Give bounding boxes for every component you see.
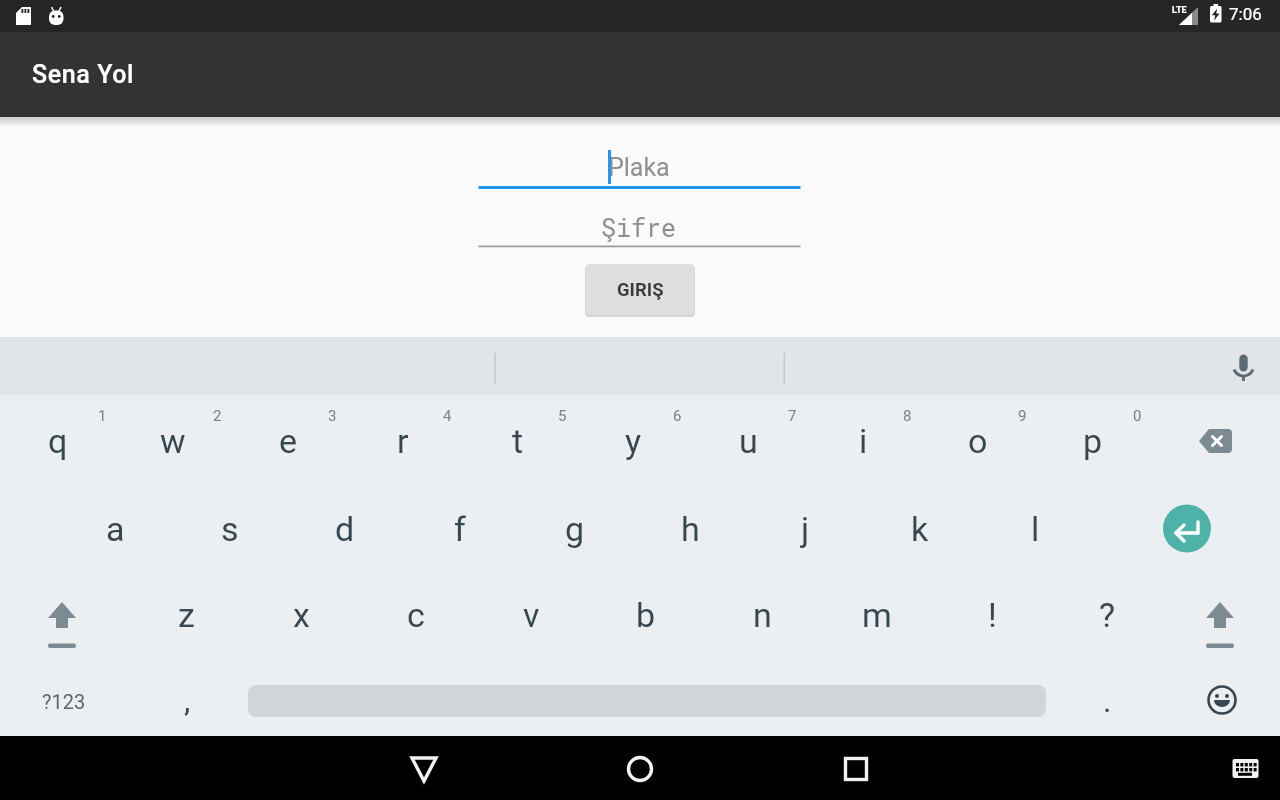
button[interactable]: p — [1036, 398, 1150, 484]
button[interactable] — [384, 736, 464, 800]
staticText: m — [862, 595, 892, 635]
button[interactable]: Şifre — [478, 207, 800, 248]
staticText: 4 — [443, 407, 452, 425]
button[interactable] — [1222, 745, 1270, 793]
button[interactable]: g — [518, 486, 632, 572]
button[interactable]: b — [589, 572, 703, 658]
staticText: 8 — [903, 407, 912, 425]
staticText: 0 — [1133, 407, 1142, 425]
button[interactable]: j — [748, 486, 862, 572]
button[interactable]: . — [1050, 658, 1164, 744]
button[interactable]: y — [576, 398, 690, 484]
button[interactable]: h — [633, 486, 747, 572]
button[interactable]: l — [978, 486, 1092, 572]
staticText: 6 — [673, 407, 682, 425]
staticText: 2 — [213, 407, 222, 425]
button[interactable]: f — [403, 486, 517, 572]
button[interactable]: n — [705, 572, 819, 658]
staticText: 9 — [1018, 407, 1027, 425]
staticText: ? — [1099, 595, 1116, 635]
button[interactable]: ?123 — [0, 658, 128, 744]
button[interactable]: c — [359, 572, 473, 658]
staticText: Sena Yol — [32, 60, 135, 89]
staticText: . — [1103, 682, 1112, 720]
staticText: w — [160, 421, 186, 461]
button[interactable] — [0, 572, 125, 658]
staticText: o — [968, 421, 988, 461]
button[interactable]: z — [129, 572, 243, 658]
button[interactable]: u — [691, 398, 805, 484]
staticText: f — [454, 509, 466, 549]
staticText: LTE — [1172, 5, 1187, 16]
staticText: p — [1083, 421, 1103, 461]
button[interactable]: t — [461, 398, 575, 484]
staticText: 7 — [788, 407, 797, 425]
staticText: v — [523, 595, 540, 635]
staticText: 5 — [558, 407, 567, 425]
staticText: e — [279, 421, 298, 461]
button[interactable]: r — [346, 398, 460, 484]
staticText: Plaka — [608, 153, 670, 182]
button[interactable]: ? — [1050, 572, 1164, 658]
button[interactable] — [1192, 658, 1280, 744]
button[interactable] — [1151, 398, 1280, 484]
staticText: n — [753, 595, 772, 635]
staticText: 3 — [328, 407, 337, 425]
button[interactable] — [816, 736, 896, 800]
button[interactable]: , — [130, 657, 244, 743]
button[interactable] — [1139, 486, 1259, 572]
button[interactable]: v — [474, 572, 588, 658]
staticText: , — [184, 681, 191, 719]
button[interactable]: e — [231, 398, 345, 484]
staticText: i — [859, 421, 868, 461]
staticText: q — [48, 421, 68, 461]
staticText: u — [739, 421, 758, 461]
staticText: x — [293, 595, 310, 635]
button[interactable]: a — [58, 486, 172, 572]
staticText: c — [407, 595, 425, 635]
staticText: a — [106, 509, 125, 549]
staticText: z — [178, 595, 195, 635]
button[interactable] — [1223, 347, 1263, 387]
button[interactable]: Plaka — [478, 143, 800, 192]
staticText: r — [397, 421, 409, 461]
button[interactable]: x — [244, 572, 358, 658]
staticText: h — [681, 509, 700, 549]
staticText: g — [565, 509, 585, 549]
staticText: j — [801, 509, 810, 549]
staticText: s — [221, 509, 239, 549]
staticText: l — [1031, 509, 1040, 549]
button[interactable]: d — [288, 486, 402, 572]
staticText: 1 — [98, 407, 107, 425]
staticText: ! — [988, 595, 997, 635]
button[interactable]: i — [806, 398, 920, 484]
staticText: t — [512, 421, 524, 461]
button[interactable]: o — [921, 398, 1035, 484]
button[interactable]: w — [116, 398, 230, 484]
staticText: k — [911, 509, 929, 549]
button[interactable]: m — [820, 572, 934, 658]
button[interactable]: k — [863, 486, 977, 572]
staticText: b — [636, 595, 656, 635]
button[interactable] — [600, 736, 680, 800]
staticText: 7:06 — [1229, 4, 1262, 24]
staticText: ?123 — [42, 690, 86, 713]
staticText: Şifre — [601, 211, 677, 244]
button[interactable]: ! — [935, 572, 1049, 658]
button[interactable]: GIRIŞ — [586, 264, 694, 315]
button[interactable]: q — [1, 398, 115, 484]
staticText: GIRIŞ — [617, 279, 664, 301]
button[interactable] — [1157, 572, 1280, 658]
staticText: y — [625, 421, 642, 461]
button[interactable]: s — [173, 486, 287, 572]
staticText: d — [335, 509, 355, 549]
